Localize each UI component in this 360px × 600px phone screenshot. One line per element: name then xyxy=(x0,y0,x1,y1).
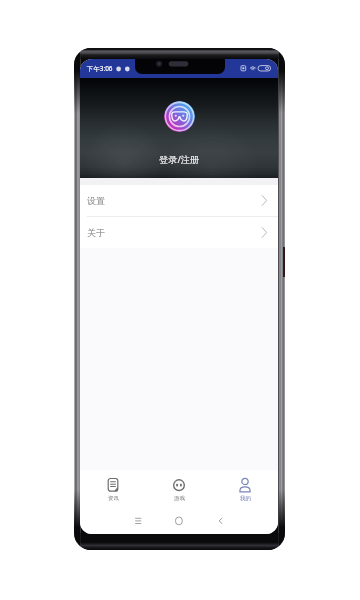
button[interactable]: Home xyxy=(146,507,212,534)
staticText: 下午3:06 xyxy=(87,64,113,73)
staticText: 资讯 xyxy=(108,495,119,502)
staticText: 登录/注册 xyxy=(159,153,200,166)
staticText: 我的 xyxy=(240,495,251,502)
staticText: 关于 xyxy=(87,227,105,238)
button[interactable]: 设置 xyxy=(80,185,278,216)
button[interactable]: 游戏 xyxy=(146,470,212,507)
button[interactable]: Back xyxy=(212,507,278,534)
button[interactable]: Recent apps xyxy=(80,507,146,534)
button[interactable]: 资讯 xyxy=(80,470,146,507)
button[interactable]: Avatar xyxy=(164,101,195,132)
button[interactable]: 关于 xyxy=(80,217,278,248)
staticText: 设置 xyxy=(87,195,105,206)
staticText: 游戏 xyxy=(174,495,185,502)
button[interactable]: 我的 xyxy=(212,470,278,507)
